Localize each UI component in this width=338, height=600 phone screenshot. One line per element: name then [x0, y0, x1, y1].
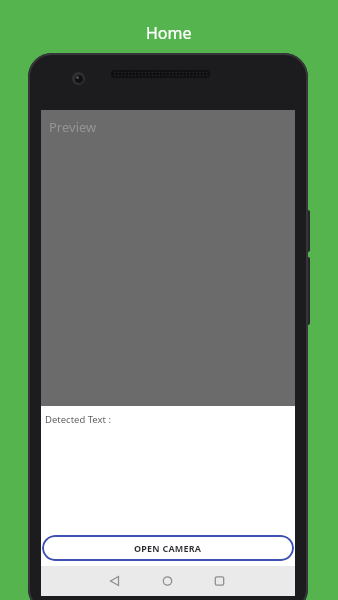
- staticText: OPEN CAMERA: [134, 542, 202, 554]
- staticText: Home: [146, 22, 192, 44]
- staticText: Preview: [49, 118, 97, 136]
- button[interactable]: OPEN CAMERA: [42, 535, 294, 561]
- staticText: Detected Text :: [45, 413, 111, 426]
